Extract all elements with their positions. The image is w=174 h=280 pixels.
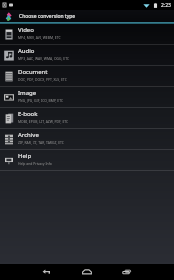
staticText: Video [18, 26, 34, 34]
staticText: MOBI, EPUB, LIT, AZW, PDF, ETC [18, 119, 69, 124]
button[interactable]: Document [0, 66, 174, 87]
staticText: E-book [18, 110, 38, 118]
staticText: DOC, PDF, DOCX, PPT, XLS, ETC [18, 77, 67, 82]
button[interactable]: Archive [0, 129, 174, 150]
staticText: MP3, AAC, WAV, WMA, OGG, ETC [18, 56, 70, 61]
staticText: Archive [18, 131, 39, 139]
staticText: Choose conversion type [19, 13, 76, 20]
button[interactable]: Audio [0, 45, 174, 66]
staticText: Audio [18, 47, 35, 55]
button[interactable]: Video [0, 24, 174, 45]
staticText: Document [18, 68, 48, 76]
staticText: MP4, MKV, AVI, WEBM, ETC [18, 35, 61, 40]
staticText: PNG, JPG, GIF, ICO, BMP, ETC [18, 98, 64, 103]
staticText: Help and Privacy Info [18, 161, 52, 166]
button[interactable]: Home [68, 264, 106, 280]
button[interactable]: Help [0, 150, 174, 171]
button[interactable]: Back [28, 264, 66, 280]
button[interactable]: Image [0, 87, 174, 108]
button[interactable]: Recent apps [108, 264, 146, 280]
staticText: ZIP, RAR, 7Z, TAR, TARGZ, ETC [18, 140, 65, 145]
button[interactable]: E-book [0, 108, 174, 129]
staticText: 2:23 [161, 2, 171, 9]
staticText: Image [18, 89, 37, 97]
staticText: Help [18, 152, 32, 160]
